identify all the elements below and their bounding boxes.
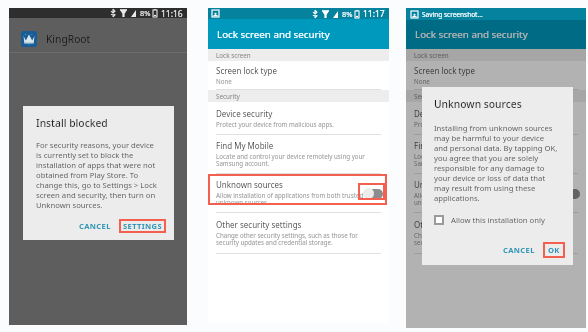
button[interactable]: Device security bbox=[208, 102, 389, 134]
staticText: Change other security settings, such as … bbox=[216, 231, 382, 247]
button[interactable]: Other security settings bbox=[406, 213, 586, 253]
staticText: Allow installation of applications from … bbox=[414, 191, 574, 207]
staticText: Lock screen bbox=[414, 51, 449, 60]
staticText: Other security settings bbox=[216, 219, 302, 230]
staticText: Device security bbox=[216, 108, 273, 119]
staticText: Installing from unknown sources may be h… bbox=[434, 123, 559, 203]
staticText: Lock screen and security bbox=[415, 28, 528, 41]
other: Unknown sources toggle bbox=[363, 188, 383, 199]
staticText: Find My Mobile bbox=[414, 140, 472, 151]
staticText: Protect your device from malicious apps. bbox=[414, 120, 532, 128]
staticText: Security bbox=[216, 92, 240, 101]
button[interactable]: Find My Mobile bbox=[406, 135, 586, 173]
other: Unknown sources toggle bbox=[560, 188, 580, 199]
button[interactable]: Device security bbox=[406, 102, 586, 134]
staticText: Install blocked bbox=[36, 116, 108, 130]
staticText: CANCEL bbox=[79, 221, 111, 231]
staticText: Other security settings bbox=[414, 219, 500, 230]
staticText: Screen lock type bbox=[414, 65, 475, 76]
button[interactable]: Unknown sources bbox=[208, 174, 389, 212]
button[interactable]: Allow this installation only bbox=[434, 215, 545, 225]
staticText: OK bbox=[548, 245, 560, 255]
button[interactable]: CANCEL bbox=[76, 219, 114, 233]
button[interactable]: SETTINGS bbox=[119, 219, 166, 233]
staticText: Unknown sources bbox=[414, 179, 481, 190]
staticText: Change other security settings, such as … bbox=[414, 231, 580, 247]
staticText: CANCEL bbox=[503, 245, 535, 255]
staticText: For security reasons, your device is cur… bbox=[36, 140, 160, 210]
staticText: Saving screenshot... bbox=[422, 10, 483, 19]
button[interactable]: Screen lock type bbox=[208, 61, 389, 89]
staticText: KingRoot bbox=[46, 32, 91, 46]
staticText: Protect your device from malicious apps. bbox=[216, 120, 334, 128]
staticText: None bbox=[216, 77, 232, 85]
button[interactable]: Find My Mobile bbox=[208, 135, 389, 173]
button[interactable]: Other security settings bbox=[208, 213, 389, 253]
staticText: Screen lock type bbox=[216, 65, 277, 76]
staticText: Locate and control your device remotely … bbox=[414, 152, 564, 168]
staticText: Unknown sources bbox=[216, 179, 283, 190]
button[interactable]: CANCEL bbox=[500, 242, 538, 258]
staticText: 11:16 bbox=[161, 8, 183, 18]
staticText: None bbox=[414, 77, 430, 85]
staticText: 8% bbox=[342, 9, 353, 19]
staticText: Lock screen bbox=[216, 51, 251, 60]
staticText: 8% bbox=[140, 8, 151, 18]
staticText: Allow installation of applications from … bbox=[216, 191, 376, 207]
staticText: 11:17 bbox=[363, 8, 385, 19]
staticText: Unknown sources bbox=[434, 97, 522, 111]
staticText: Security bbox=[414, 92, 438, 101]
staticText: Locate and control your device remotely … bbox=[216, 152, 366, 168]
button[interactable]: OK bbox=[543, 242, 565, 258]
staticText: Allow this installation only bbox=[451, 215, 545, 225]
button[interactable]: Screen lock type bbox=[406, 61, 586, 89]
staticText: Device security bbox=[414, 108, 471, 119]
button[interactable]: Unknown sources bbox=[406, 174, 586, 212]
staticText: Find My Mobile bbox=[216, 140, 274, 151]
staticText: SETTINGS bbox=[123, 221, 162, 231]
staticText: Lock screen and security bbox=[217, 28, 330, 41]
